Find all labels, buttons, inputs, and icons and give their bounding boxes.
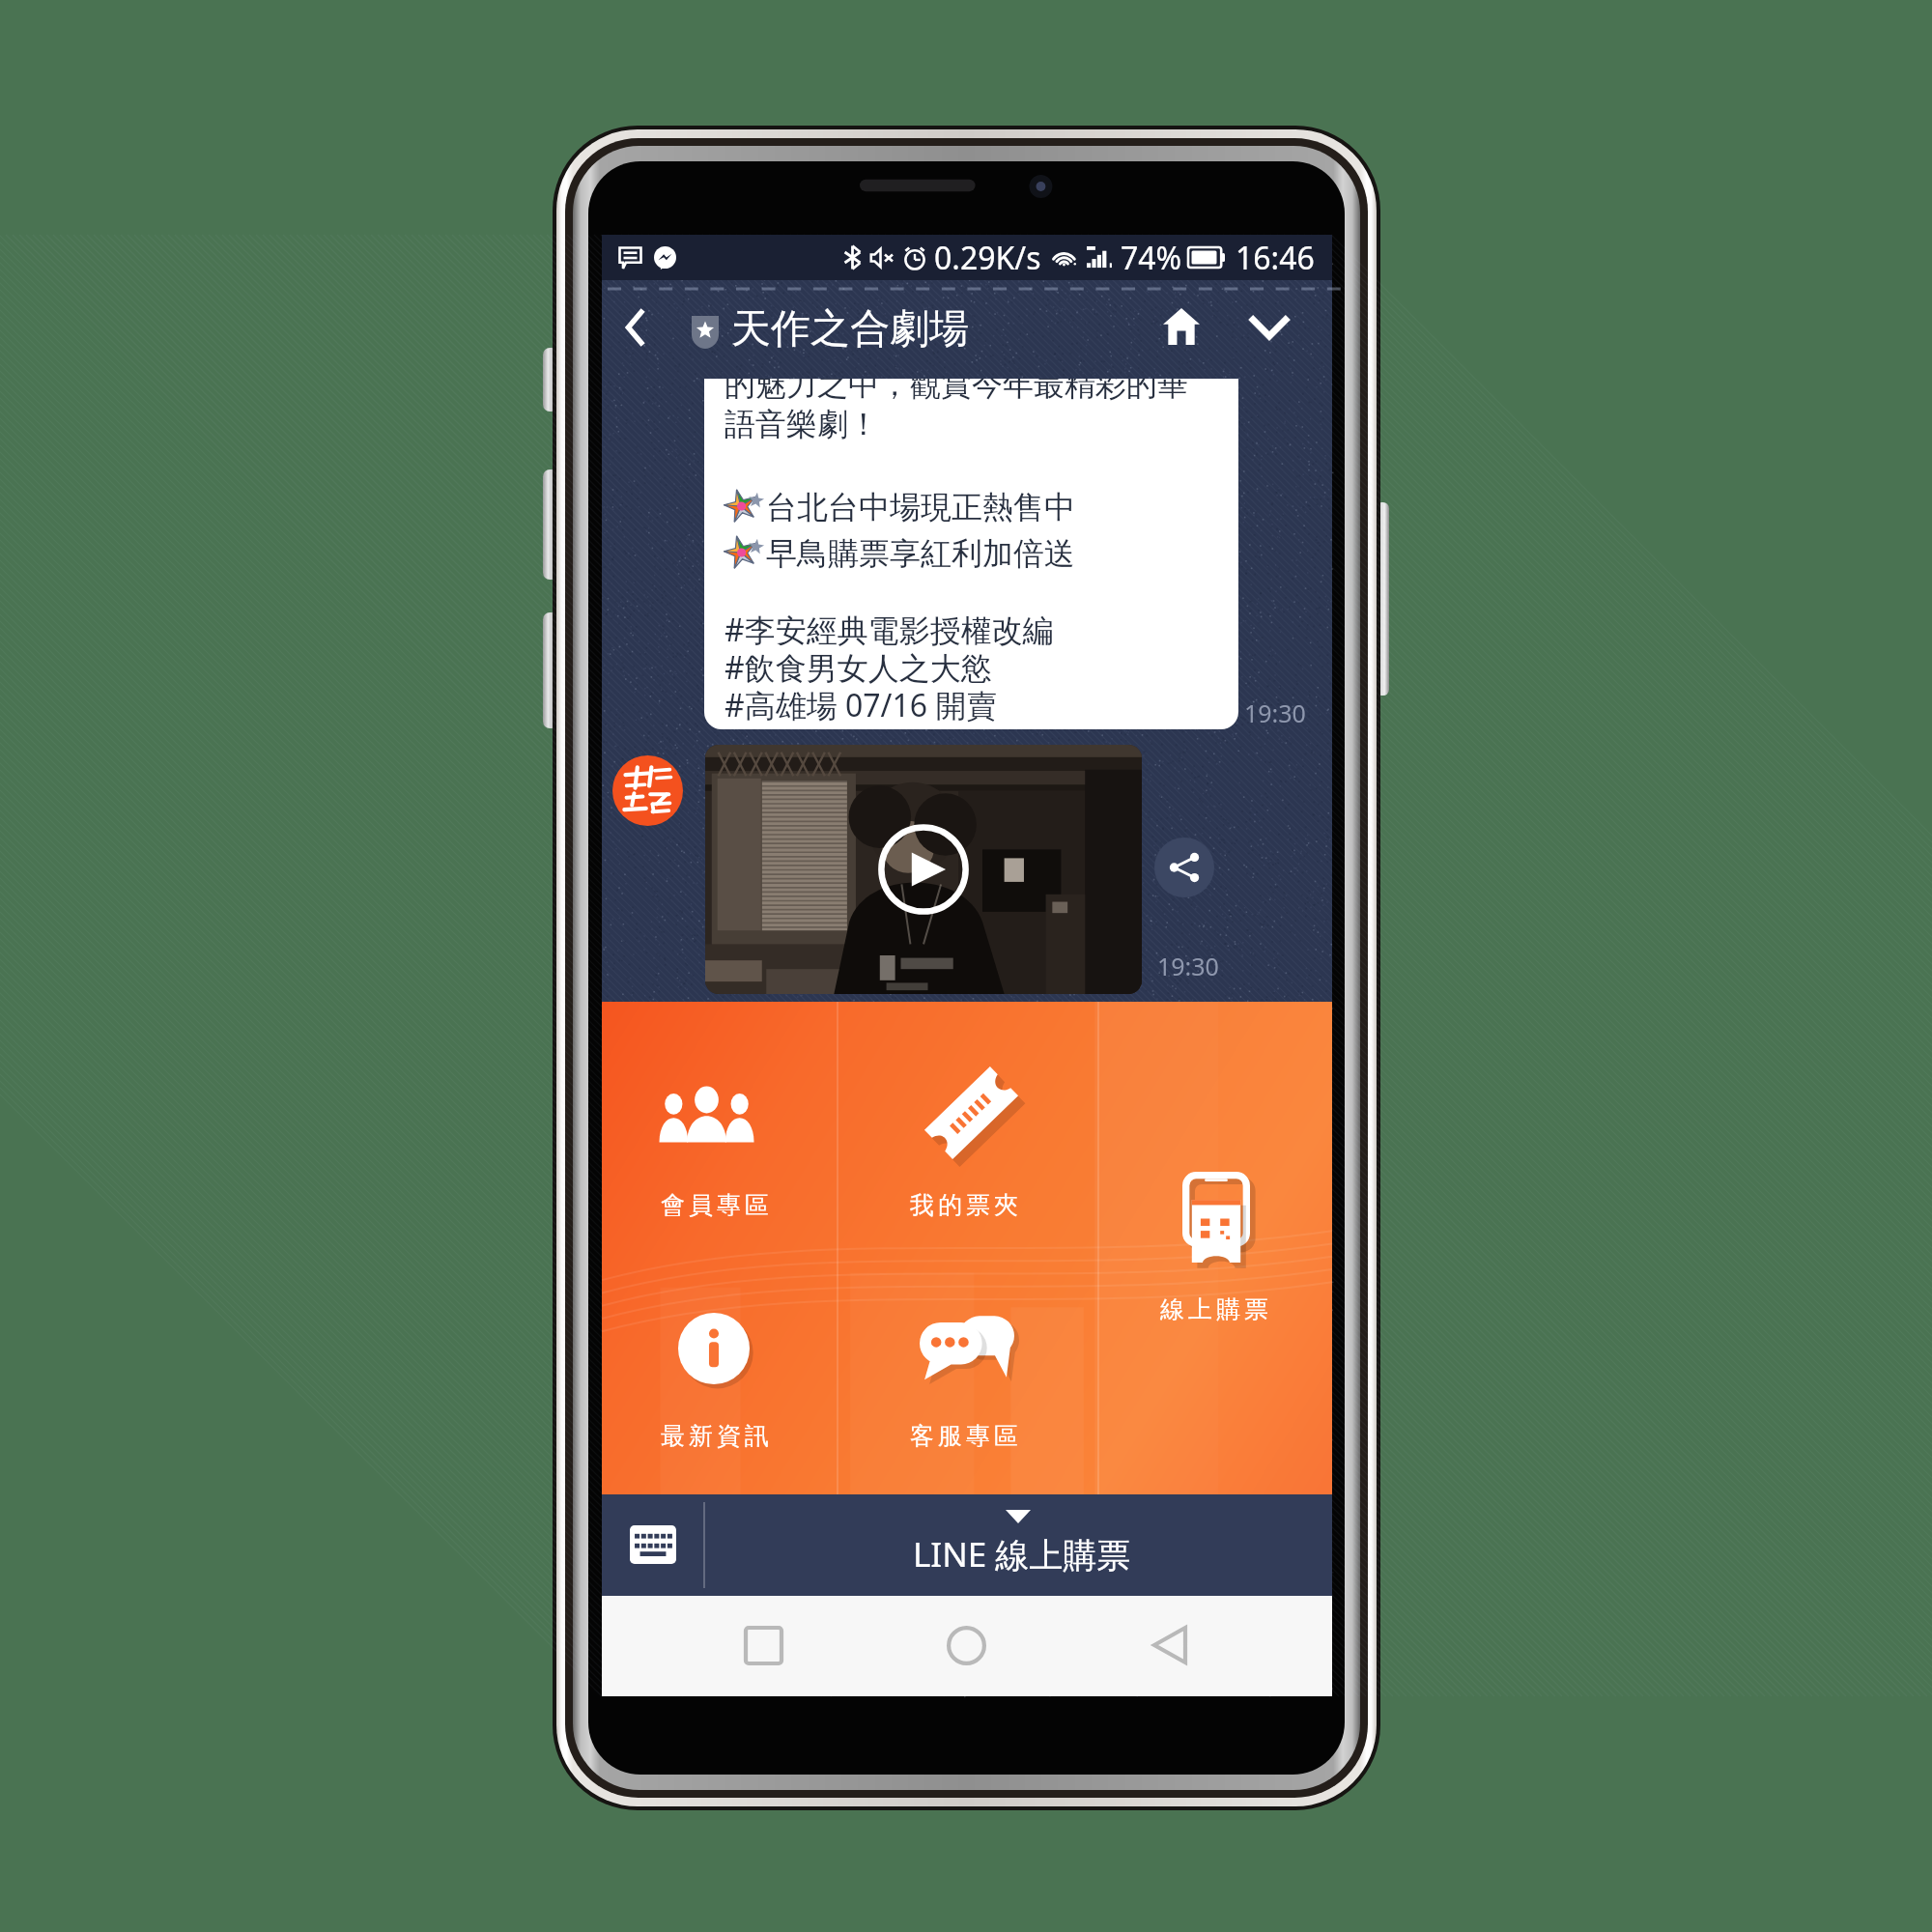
staticText: 線上購票 <box>1158 1294 1270 1324</box>
button[interactable]: Play video <box>705 745 1142 994</box>
staticText: 74% <box>1121 237 1182 279</box>
staticText: 19:30 <box>1244 696 1306 729</box>
button[interactable]: Profile picture <box>612 755 683 826</box>
button[interactable]: 會員專區 <box>621 1050 819 1267</box>
button[interactable]: Share <box>1154 838 1214 897</box>
staticText: 會員專區 <box>659 1190 771 1220</box>
staticText: 早鳥購票享紅利加倍送 <box>766 534 1075 573</box>
button[interactable]: 我的票夾 <box>843 1036 1096 1267</box>
staticText: 客服專區 <box>908 1421 1020 1451</box>
button[interactable]: 客服專區 <box>843 1277 1096 1494</box>
staticText: 台北台中場現正熱售中 <box>766 488 1075 526</box>
button[interactable]: 的魅力之中，觀賞今年最精彩的華 <box>704 379 1238 729</box>
button[interactable]: Back <box>608 299 664 355</box>
staticText: 語音樂劇！ <box>724 405 879 443</box>
staticText: 我的票夾 <box>908 1190 1020 1220</box>
button[interactable]: Home <box>1149 294 1214 359</box>
staticText: 16:46 <box>1236 237 1315 279</box>
staticText: 的魅力之中，觀賞今年最精彩的華 <box>724 379 1188 404</box>
staticText: LINE 線上購票 <box>913 1531 1131 1577</box>
staticText: 最新資訊 <box>659 1421 771 1451</box>
staticText: 天作之合劇場 <box>731 304 969 355</box>
button[interactable]: Recent apps <box>723 1605 804 1686</box>
button[interactable]: Home <box>925 1605 1007 1686</box>
staticText: #李安經典電影授權改編 <box>724 609 1054 651</box>
staticText: 0.29K/s <box>934 237 1041 279</box>
button[interactable]: 最新資訊 <box>621 1277 819 1494</box>
button[interactable]: Keyboard <box>621 1513 685 1577</box>
button[interactable]: More options <box>1236 294 1302 359</box>
staticText: #高雄場 07/16 開賣 <box>724 684 998 726</box>
button[interactable]: 線上購票 <box>1109 1147 1331 1374</box>
staticText: #飲食男女人之大慾 <box>724 646 992 689</box>
staticText: 19:30 <box>1157 950 1219 982</box>
button[interactable]: Back <box>1129 1605 1210 1686</box>
